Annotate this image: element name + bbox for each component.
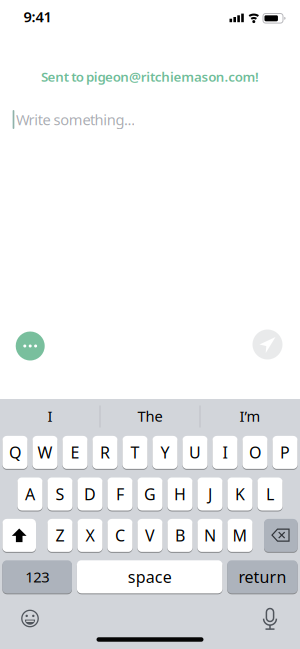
- staticText: W: [37, 442, 52, 463]
- staticText: E: [70, 442, 79, 463]
- staticText: I’m: [239, 406, 260, 426]
- staticText: G: [144, 483, 156, 505]
- staticText: The: [137, 406, 162, 426]
- button[interactable]: E: [62, 436, 88, 469]
- staticText: Z: [55, 525, 64, 546]
- staticText: I: [47, 406, 52, 426]
- button[interactable]: V: [137, 519, 163, 552]
- button[interactable]: P: [272, 436, 298, 469]
- staticText: J: [208, 483, 212, 505]
- staticText: Sent to pigeon@ritchiemason.com!: [41, 68, 259, 85]
- button[interactable]: Shift: [2, 519, 36, 552]
- button[interactable]: O: [242, 436, 268, 469]
- staticText: B: [175, 525, 185, 546]
- staticText: D: [84, 483, 96, 505]
- button[interactable]: H: [167, 478, 193, 511]
- button[interactable]: Dictation: [258, 606, 282, 630]
- button[interactable]: F: [107, 478, 133, 511]
- staticText: R: [100, 442, 110, 463]
- button[interactable]: I’m: [202, 399, 298, 433]
- button[interactable]: S: [47, 478, 73, 511]
- button[interactable]: T: [122, 436, 148, 469]
- staticText: space: [128, 566, 172, 587]
- staticText: U: [189, 442, 201, 463]
- staticText: Write something...: [16, 110, 135, 129]
- staticText: K: [235, 483, 245, 505]
- staticText: 123: [25, 567, 49, 587]
- staticText: F: [116, 483, 124, 505]
- button[interactable]: More options: [16, 331, 45, 360]
- staticText: V: [145, 525, 155, 546]
- staticText: O: [249, 442, 261, 463]
- staticText: X: [85, 525, 94, 546]
- staticText: S: [55, 483, 64, 505]
- button[interactable]: Z: [47, 519, 73, 552]
- button[interactable]: I: [212, 436, 238, 469]
- staticText: I: [222, 442, 227, 463]
- button[interactable]: The: [102, 399, 198, 433]
- button[interactable]: 123: [2, 561, 72, 594]
- button[interactable]: D: [77, 478, 103, 511]
- staticText: L: [266, 483, 274, 505]
- button[interactable]: space: [77, 561, 222, 594]
- staticText: return: [238, 566, 286, 587]
- button[interactable]: J: [197, 478, 223, 511]
- button[interactable]: Send: [252, 329, 282, 359]
- button[interactable]: Y: [152, 436, 178, 469]
- staticText: P: [280, 442, 290, 463]
- staticText: C: [115, 525, 125, 546]
- button[interactable]: C: [107, 519, 133, 552]
- button[interactable]: W: [32, 436, 58, 469]
- button[interactable]: B: [167, 519, 193, 552]
- button[interactable]: U: [182, 436, 208, 469]
- staticText: A: [25, 483, 35, 505]
- button[interactable]: A: [17, 478, 43, 511]
- button[interactable]: Q: [2, 436, 28, 469]
- staticText: N: [204, 525, 216, 546]
- button[interactable]: return: [227, 561, 298, 594]
- button[interactable]: X: [77, 519, 103, 552]
- staticText: H: [174, 483, 186, 505]
- button[interactable]: R: [92, 436, 118, 469]
- staticText: 9:41: [23, 7, 51, 26]
- button[interactable]: Emoji: [18, 606, 42, 630]
- button[interactable]: K: [227, 478, 253, 511]
- button[interactable]: N: [197, 519, 223, 552]
- button[interactable]: Delete: [264, 519, 298, 552]
- staticText: Q: [9, 442, 21, 463]
- button[interactable]: M: [227, 519, 253, 552]
- button[interactable]: I: [2, 399, 98, 433]
- staticText: T: [130, 442, 139, 463]
- staticText: M: [232, 525, 247, 546]
- button[interactable]: G: [137, 478, 163, 511]
- staticText: Y: [160, 442, 169, 463]
- button[interactable]: L: [257, 478, 283, 511]
